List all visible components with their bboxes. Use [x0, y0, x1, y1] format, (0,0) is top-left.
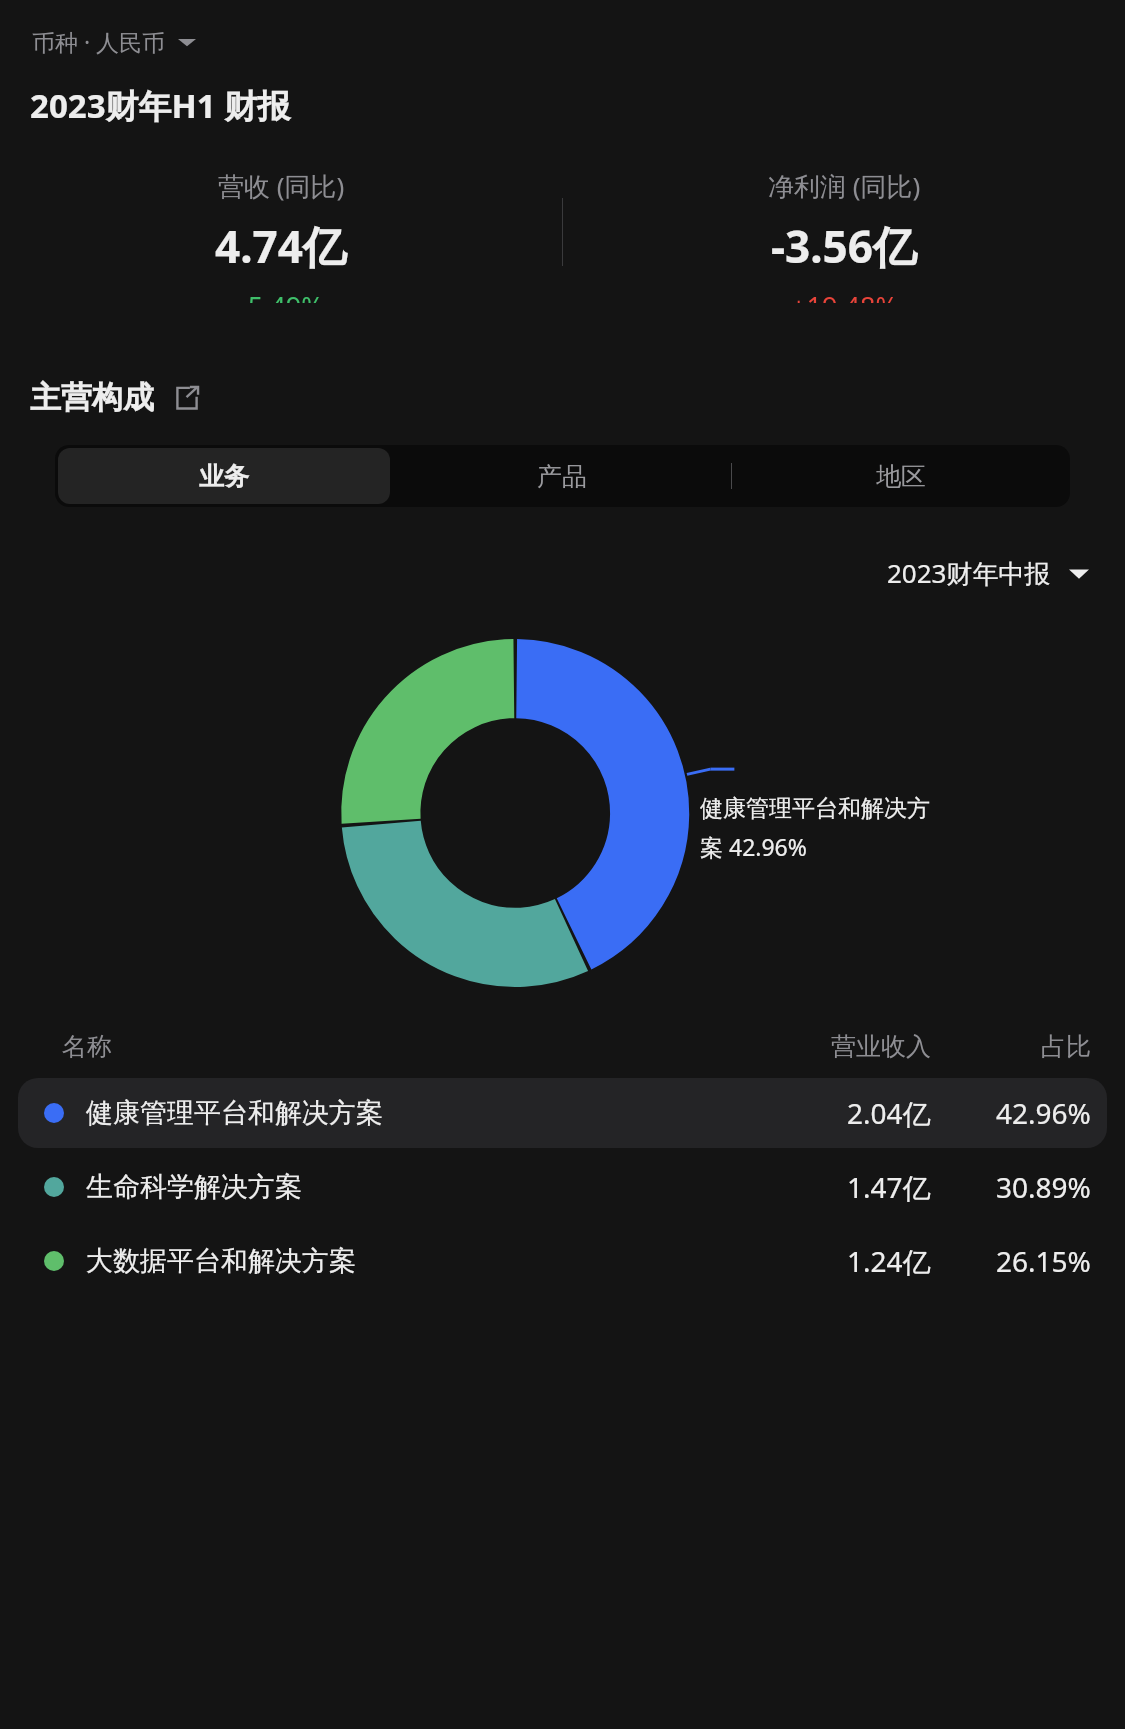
staticText: 营业收入	[831, 1031, 931, 1062]
staticText: 健康管理平台和解决方案	[86, 1096, 731, 1130]
staticText: 业务	[199, 461, 249, 492]
button[interactable]: 生命科学解决方案	[18, 1152, 1107, 1222]
staticText: -5.49%	[239, 288, 324, 303]
button[interactable]: 产品	[393, 445, 731, 507]
staticText: 2.04亿	[847, 1094, 931, 1132]
button[interactable]: 健康管理平台和解决方案	[18, 1078, 1107, 1148]
staticText: 占比	[1041, 1031, 1091, 1062]
button[interactable]: 2023财年中报	[883, 549, 1093, 597]
staticText: 4.74亿	[215, 216, 347, 276]
staticText: 生命科学解决方案	[86, 1170, 731, 1204]
button[interactable]: 大数据平台和解决方案	[18, 1226, 1107, 1296]
staticText: 净利润 (同比)	[768, 168, 921, 204]
button[interactable]: 净利润 (同比)	[563, 168, 1125, 303]
staticText: 26.15%	[996, 1242, 1091, 1280]
button[interactable]: 营收 (同比)	[0, 168, 562, 303]
button[interactable]: Share	[170, 381, 204, 415]
staticText: 1.24亿	[847, 1242, 931, 1280]
button[interactable]: 地区	[732, 445, 1070, 507]
staticText: 大数据平台和解决方案	[86, 1244, 731, 1278]
staticText: 地区	[876, 461, 926, 492]
staticText: 案 42.96%	[700, 831, 807, 862]
staticText: 42.96%	[996, 1094, 1091, 1132]
staticText: 名称	[62, 1031, 716, 1062]
staticText: 产品	[537, 461, 587, 492]
staticText: +19.48%	[791, 288, 898, 303]
button[interactable]: 业务	[58, 448, 390, 504]
staticText: 2023财年中报	[887, 555, 1051, 591]
staticText: 主营构成	[30, 378, 154, 417]
staticText: -3.56亿	[771, 216, 917, 276]
staticText: 币种 · 人民币	[32, 26, 166, 57]
staticText: 2023财年H1 财报	[30, 83, 291, 128]
button[interactable]: 币种 · 人民币	[30, 22, 198, 61]
staticText: 营收 (同比)	[218, 168, 345, 204]
staticText: 30.89%	[996, 1168, 1091, 1206]
staticText: 1.47亿	[847, 1168, 931, 1206]
staticText: 健康管理平台和解决方	[700, 794, 930, 823]
